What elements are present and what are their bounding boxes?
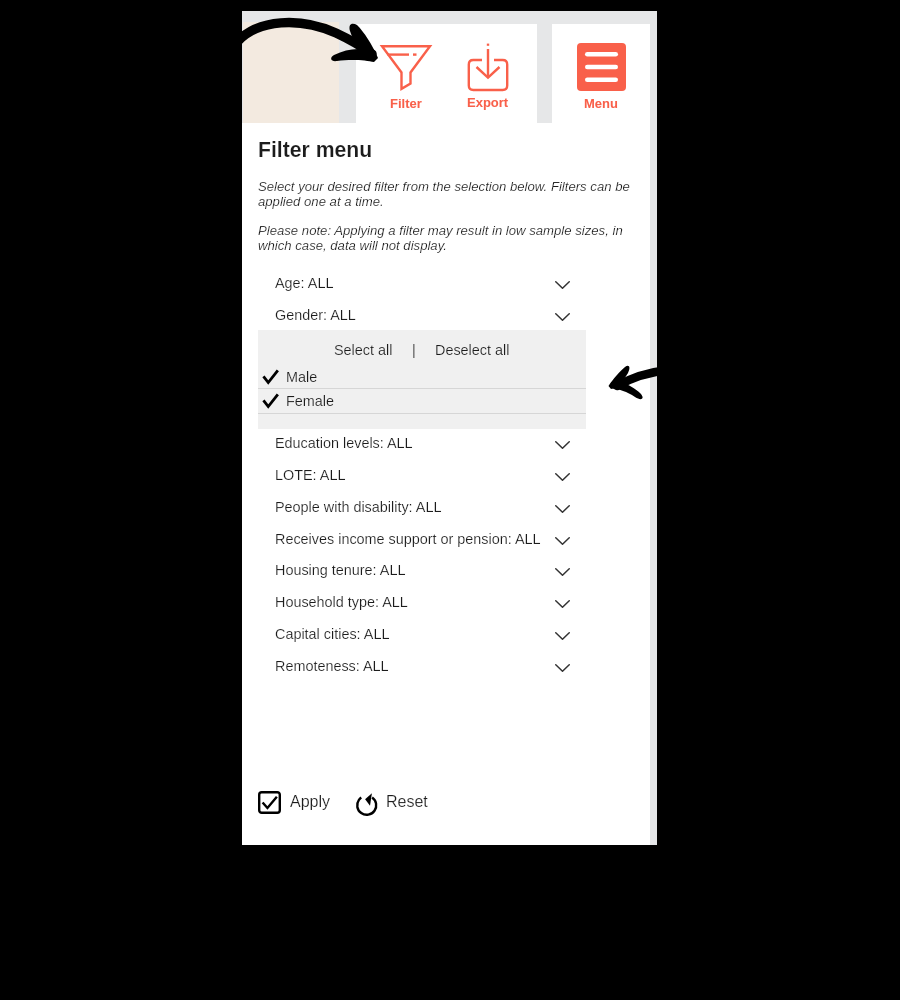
staticText: Male <box>286 369 318 385</box>
staticText: Please note: Applying a filter may resul… <box>258 223 636 252</box>
staticText: Menu <box>584 96 618 111</box>
button[interactable]: Gender: ALL <box>242 305 657 337</box>
button[interactable]: Menu <box>552 24 650 123</box>
staticText: Education levels: ALL <box>275 435 413 451</box>
button[interactable]: Export <box>442 24 533 123</box>
staticText: Reset <box>386 793 428 811</box>
staticText: LOTE: ALL <box>275 467 346 483</box>
other: Export <box>468 43 508 92</box>
button[interactable]: Reset <box>356 788 428 816</box>
staticText: Receives income support or pension: ALL <box>275 531 541 547</box>
other: Reset <box>356 789 379 816</box>
button[interactable]: Filter <box>360 24 451 123</box>
staticText: People with disability: ALL <box>275 499 442 515</box>
staticText: Select all <box>334 342 393 358</box>
staticText: Gender: ALL <box>275 307 356 323</box>
button[interactable]: Receives income support or pension: ALL <box>242 529 657 561</box>
button[interactable]: Education levels: ALL <box>242 433 657 465</box>
staticText: Export <box>467 95 509 110</box>
button[interactable]: Household type: ALL <box>242 592 657 624</box>
other: Filter <box>381 45 431 90</box>
button[interactable]: Male <box>258 367 586 387</box>
staticText: Remoteness: ALL <box>275 658 389 674</box>
button[interactable]: LOTE: ALL <box>242 465 657 497</box>
staticText: Select your desired filter from the sele… <box>258 179 636 208</box>
staticText: Apply <box>290 793 331 811</box>
button[interactable]: Deselect all <box>433 342 512 358</box>
staticText: | <box>412 342 416 358</box>
staticText: Housing tenure: ALL <box>275 562 406 578</box>
staticText: Age: ALL <box>275 275 334 291</box>
button[interactable]: Remoteness: ALL <box>242 656 657 688</box>
button[interactable]: Age: ALL <box>242 273 657 305</box>
staticText: Deselect all <box>435 342 510 358</box>
staticText: Capital cities: ALL <box>275 626 390 642</box>
button[interactable]: Housing tenure: ALL <box>242 560 657 592</box>
button[interactable]: Capital cities: ALL <box>242 624 657 656</box>
button[interactable]: Select all <box>332 342 395 358</box>
staticText: Filter <box>390 96 422 111</box>
staticText: Female <box>286 393 334 409</box>
button[interactable]: Apply <box>258 788 331 816</box>
staticText: Household type: ALL <box>275 594 408 610</box>
button[interactable]: Female <box>258 391 586 411</box>
button[interactable]: People with disability: ALL <box>242 497 657 529</box>
staticText: Filter menu <box>258 138 373 162</box>
